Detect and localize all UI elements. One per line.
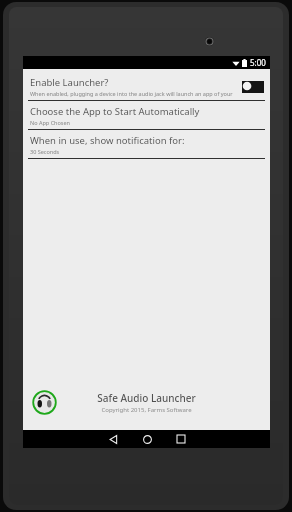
- button[interactable]: Choose the App to Start Automatically: [23, 101, 270, 129]
- staticText: 5:00: [250, 57, 266, 68]
- button[interactable]: Home: [130, 430, 164, 448]
- staticText: Enable Launcher?: [30, 76, 109, 89]
- staticText: Choose the App to Start Automatically: [30, 105, 200, 118]
- staticText: No App Chosen: [30, 119, 70, 126]
- staticText: Safe Audio Launcher: [97, 391, 196, 405]
- button[interactable]: Enable Launcher?: [23, 72, 270, 100]
- other: Safe Audio Launcher logo: [32, 390, 57, 415]
- staticText: When in use, show notification for:: [30, 134, 185, 147]
- staticText: When enabled, plugging a device into the…: [30, 90, 239, 97]
- staticText: Copyright 2015, Farms Software: [101, 406, 192, 414]
- button[interactable]: Enable Launcher toggle: [242, 81, 264, 93]
- button[interactable]: Recent apps: [164, 430, 198, 448]
- button[interactable]: When in use, show notification for:: [23, 130, 270, 158]
- staticText: 30 Seconds: [30, 148, 60, 155]
- button[interactable]: Back: [96, 430, 130, 448]
